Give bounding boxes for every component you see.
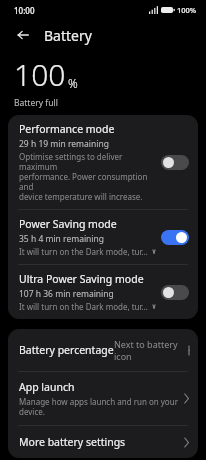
staticText: It will turn on the Dark mode, tur… — [19, 301, 148, 312]
staticText: App launch — [19, 380, 75, 394]
staticText: More battery settings — [19, 435, 126, 449]
staticText: Performance mode — [19, 122, 115, 136]
staticText: Battery full — [14, 97, 58, 109]
staticText: 107 h 36 min remaining — [19, 288, 114, 300]
button[interactable]: Off — [161, 155, 189, 170]
button[interactable]: Battery percentage — [8, 329, 198, 371]
staticText: 35 h 4 min remaining — [19, 233, 105, 245]
staticText: 100% — [177, 5, 197, 15]
staticText: Optimise settings to deliver maximum per… — [19, 151, 155, 202]
staticText: 29 h 19 min remaining — [19, 138, 109, 150]
button[interactable]: App launch — [8, 372, 198, 425]
button[interactable]: Back — [12, 24, 34, 46]
button[interactable]: Performance mode — [8, 115, 198, 209]
staticText: Battery — [44, 26, 92, 45]
staticText: Battery percentage — [19, 343, 114, 357]
staticText: Next to battery icon — [114, 338, 189, 362]
staticText: 100 — [14, 54, 66, 95]
staticText: 10:00 — [14, 5, 35, 16]
button[interactable]: Ultra Power Saving mode — [8, 265, 198, 319]
staticText: Ultra Power Saving mode — [19, 272, 144, 286]
staticText: It will turn on the Dark mode, tur… — [19, 246, 148, 257]
button[interactable]: Power Saving mode — [8, 210, 198, 264]
button[interactable]: On — [161, 230, 189, 245]
button[interactable]: Off — [161, 285, 189, 300]
staticText: Manage how apps launch and run on your d… — [19, 396, 178, 417]
button[interactable]: More battery settings — [8, 426, 198, 458]
staticText: Power Saving mode — [19, 217, 117, 231]
staticText: % — [68, 75, 78, 91]
